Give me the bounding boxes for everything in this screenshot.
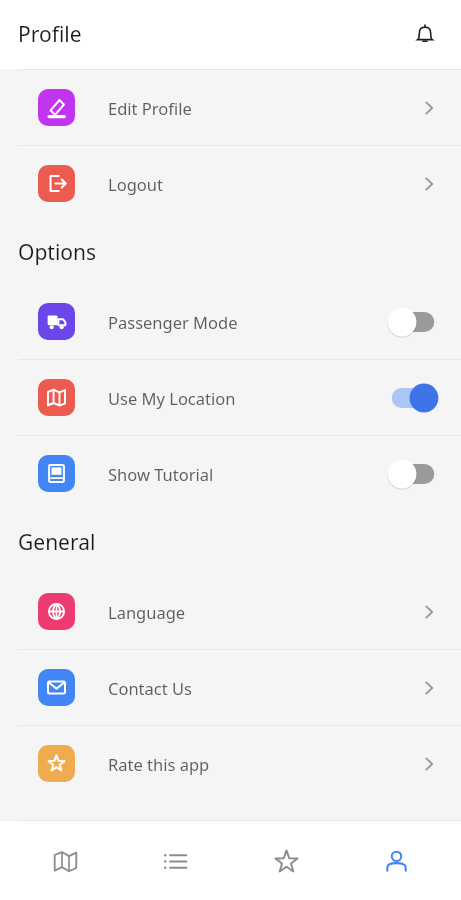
button[interactable]: Use My Location on xyxy=(387,382,439,414)
staticText: General xyxy=(18,528,96,557)
button[interactable]: Passenger Mode off xyxy=(387,306,439,338)
button[interactable]: Logout xyxy=(0,146,461,221)
staticText: Language xyxy=(108,601,186,623)
staticText: Use My Location xyxy=(108,387,236,409)
button[interactable]: List xyxy=(129,830,221,892)
staticText: Show Tutorial xyxy=(108,463,214,485)
button[interactable]: Favorites xyxy=(240,830,332,892)
staticText: Logout xyxy=(108,173,163,195)
staticText: Passenger Mode xyxy=(108,311,238,333)
staticText: Profile xyxy=(18,20,82,49)
button[interactable]: Notifications xyxy=(403,13,447,57)
button[interactable]: Edit Profile xyxy=(0,70,461,145)
staticText: Options xyxy=(18,238,97,267)
button[interactable]: Map xyxy=(19,830,111,892)
button[interactable]: Profile xyxy=(350,830,442,892)
staticText: Contact Us xyxy=(108,677,192,699)
button[interactable]: Show Tutorial off xyxy=(387,458,439,490)
button[interactable]: Show Tutorial xyxy=(0,436,461,511)
button[interactable]: Rate this app xyxy=(0,726,461,801)
staticText: Rate this app xyxy=(108,753,210,775)
staticText: Edit Profile xyxy=(108,97,192,119)
button[interactable]: Use My Location xyxy=(0,360,461,435)
button[interactable]: Contact Us xyxy=(0,650,461,725)
button[interactable]: Passenger Mode xyxy=(0,284,461,359)
button[interactable]: Language xyxy=(0,574,461,649)
